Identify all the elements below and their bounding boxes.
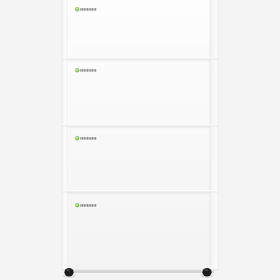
button[interactable]: Modular home battery storage tower	[0, 0, 280, 280]
